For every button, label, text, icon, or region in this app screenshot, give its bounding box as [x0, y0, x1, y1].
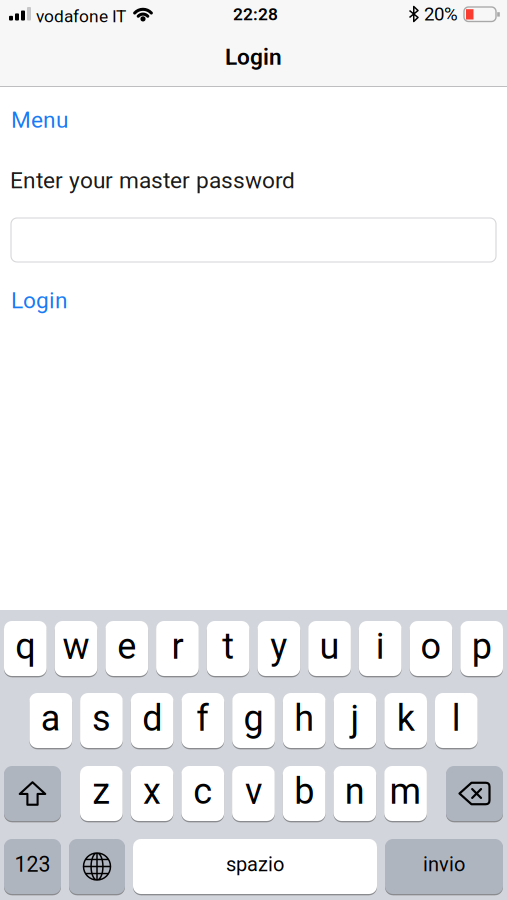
button[interactable]: r — [156, 621, 199, 676]
staticText: p — [472, 626, 492, 667]
button[interactable]: m — [384, 766, 427, 821]
staticText: n — [345, 771, 365, 812]
staticText: l — [452, 698, 461, 739]
staticText: m — [390, 771, 422, 812]
staticText: s — [92, 698, 111, 739]
staticText: o — [420, 626, 441, 667]
button[interactable]: Menu — [11, 107, 68, 133]
staticText: Login — [225, 44, 282, 70]
staticText: w — [63, 626, 90, 667]
staticText: x — [143, 771, 161, 812]
button[interactable]: u — [308, 621, 351, 676]
button[interactable]: w — [55, 621, 97, 676]
button[interactable]: a — [29, 693, 72, 748]
staticText: Menu — [11, 107, 68, 133]
staticText: z — [92, 771, 110, 812]
button[interactable]: f — [181, 693, 224, 748]
staticText: y — [270, 626, 287, 667]
button[interactable]: Shift — [4, 766, 61, 821]
button[interactable]: b — [283, 766, 325, 821]
button[interactable]: y — [257, 621, 300, 676]
staticText: vodafone IT — [36, 6, 126, 26]
button[interactable]: k — [384, 693, 427, 748]
staticText: Enter your master password — [10, 167, 295, 193]
staticText: spazio — [226, 853, 284, 876]
button[interactable]: s — [80, 693, 123, 748]
button[interactable]: p — [460, 621, 503, 676]
staticText: a — [41, 698, 61, 739]
staticText: g — [244, 698, 264, 739]
button[interactable]: c — [181, 766, 224, 821]
button[interactable]: spazio — [133, 839, 377, 894]
button[interactable]: n — [333, 766, 376, 821]
button[interactable]: Numbers — [4, 839, 61, 894]
button[interactable]: z — [80, 766, 123, 821]
staticText: f — [196, 698, 209, 739]
button[interactable]: Login — [11, 287, 68, 313]
staticText: Login — [11, 287, 68, 313]
button[interactable]: j — [334, 693, 376, 748]
staticText: j — [350, 698, 359, 739]
button[interactable]: Master password — [11, 218, 496, 262]
staticText: 123 — [14, 852, 50, 877]
button[interactable]: h — [283, 693, 326, 748]
button[interactable]: t — [207, 621, 249, 676]
staticText: v — [245, 771, 262, 812]
button[interactable]: d — [131, 693, 173, 748]
staticText: i — [376, 626, 385, 667]
button[interactable]: v — [232, 766, 275, 821]
staticText: 20% — [424, 3, 458, 25]
staticText: q — [15, 626, 35, 667]
button[interactable]: q — [4, 621, 47, 676]
button[interactable]: e — [105, 621, 148, 676]
staticText: e — [117, 626, 136, 667]
button[interactable]: o — [410, 621, 452, 676]
staticText: h — [294, 698, 314, 739]
button[interactable]: Next keyboard — [69, 839, 125, 894]
staticText: d — [142, 698, 162, 739]
button[interactable]: Delete — [446, 766, 503, 821]
staticText: b — [294, 771, 314, 812]
staticText: k — [397, 698, 415, 739]
button[interactable]: invio — [385, 839, 503, 894]
staticText: c — [193, 771, 212, 812]
staticText: u — [320, 626, 340, 667]
button[interactable]: l — [435, 693, 478, 748]
button[interactable]: g — [232, 693, 275, 748]
staticText: invio — [423, 853, 465, 876]
button[interactable]: i — [359, 621, 402, 676]
button[interactable]: x — [131, 766, 173, 821]
staticText: t — [222, 626, 234, 667]
staticText: 22:28 — [233, 4, 278, 24]
staticText: r — [171, 626, 183, 667]
